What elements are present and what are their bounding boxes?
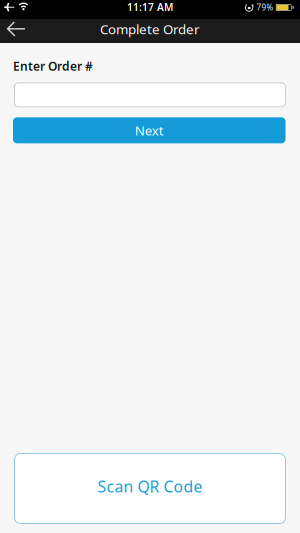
button[interactable]: Scan QR Code [14,453,286,524]
staticText: Complete Order [100,20,200,38]
staticText: Enter Order # [13,58,93,74]
staticText: Next [135,121,164,139]
button[interactable]: Next [13,117,285,143]
staticText: 11:17 AM [127,0,173,14]
staticText: Scan QR Code [97,476,202,497]
staticText: 79% [256,2,273,13]
button[interactable]: Order number [14,82,286,107]
button[interactable]: Back [0,18,31,40]
